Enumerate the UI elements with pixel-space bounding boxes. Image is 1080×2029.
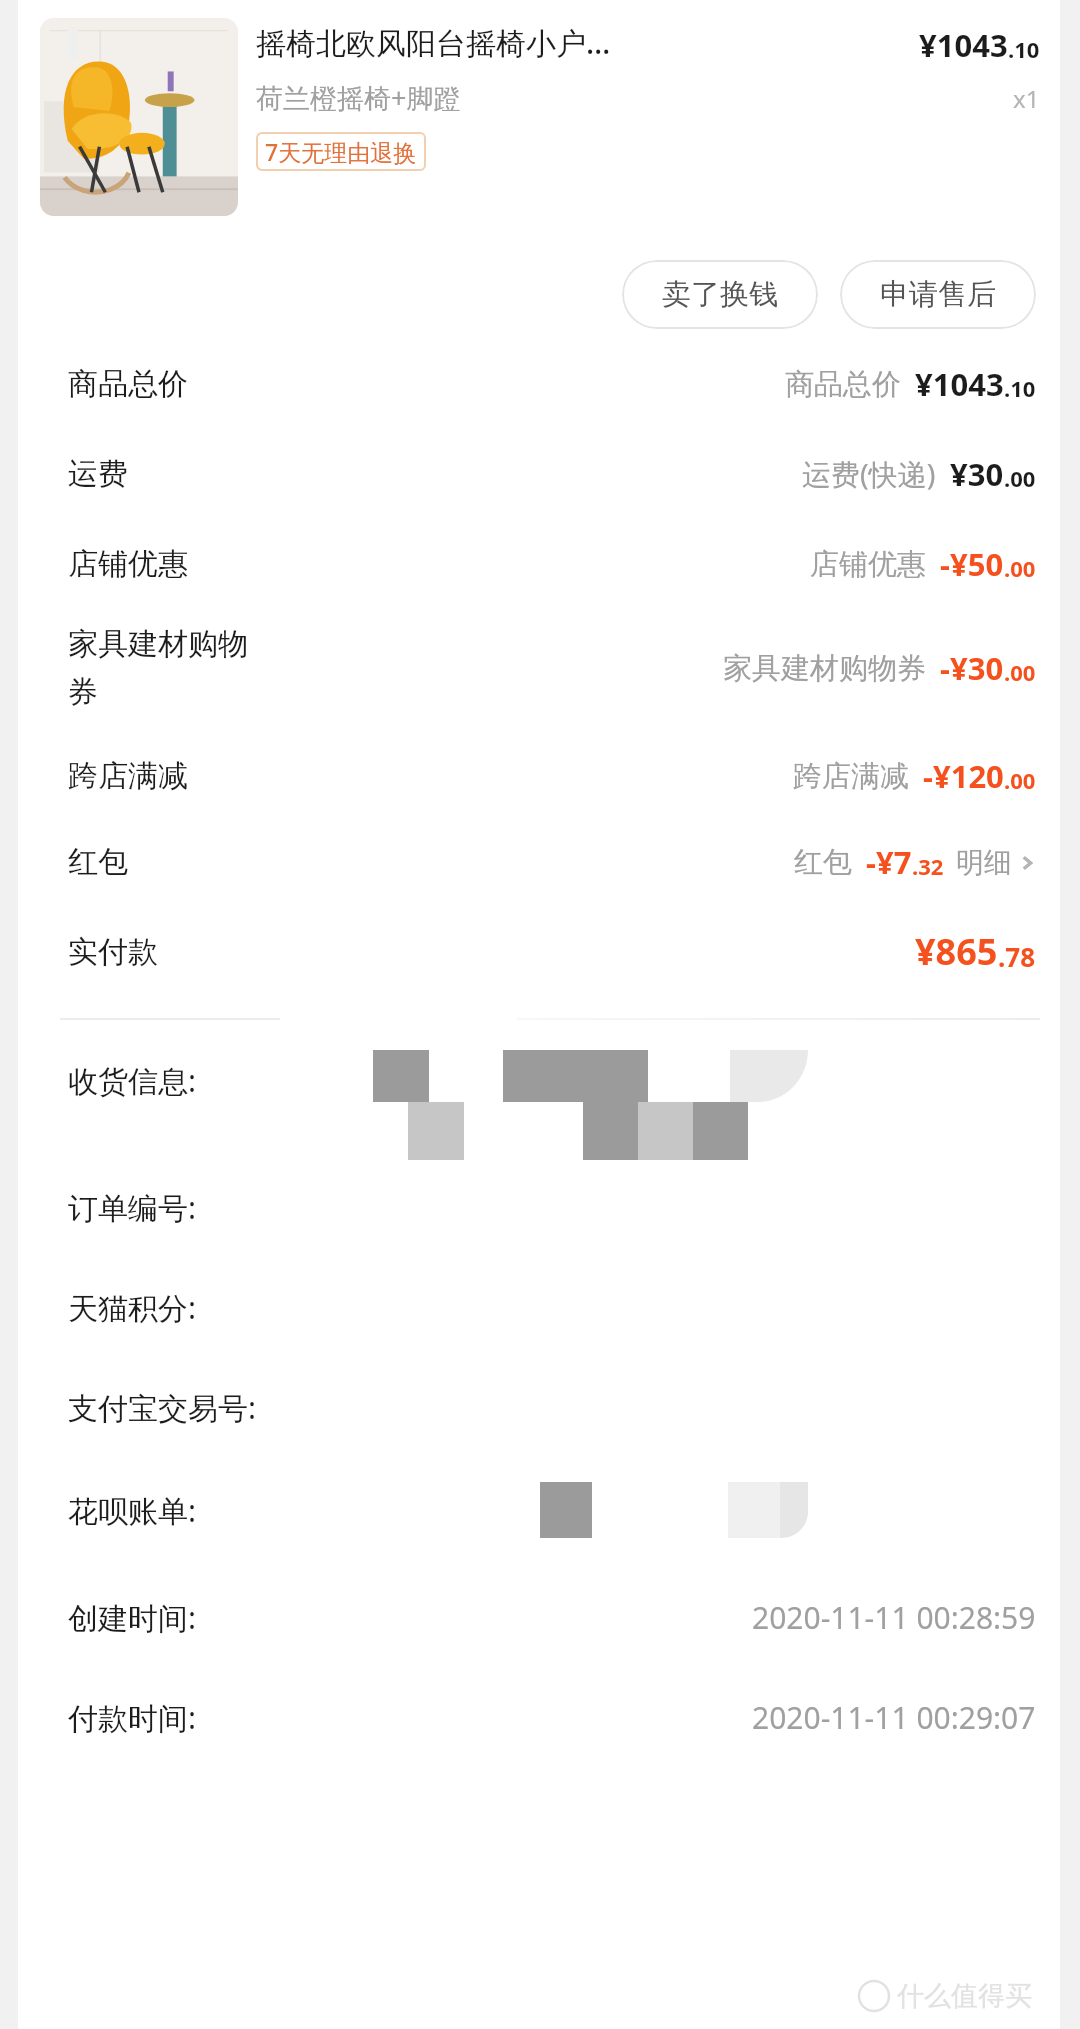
staticText: 花呗账单:: [68, 1490, 197, 1531]
button[interactable]: 卖了换钱: [622, 260, 818, 329]
staticText: 荷兰橙摇椅+脚蹬: [256, 79, 461, 116]
staticText: ¥865: [915, 927, 998, 976]
staticText: 店铺优惠: [810, 546, 926, 583]
staticText: 摇椅北欧风阳台摇椅小户…: [256, 22, 611, 63]
staticText: 跨店满减: [68, 757, 188, 795]
staticText: .00: [1004, 553, 1036, 583]
staticText: -¥30: [940, 647, 1004, 689]
staticText: 家具建材购物券: [723, 650, 926, 687]
staticText: 支付宝交易号:: [68, 1387, 257, 1428]
staticText: 2020-11-11 00:28:59: [752, 1597, 1036, 1638]
staticText: -¥7: [866, 841, 912, 883]
staticText: 什么值得买: [897, 1979, 1032, 2013]
staticText: 红包: [794, 844, 852, 881]
staticText: .78: [998, 939, 1036, 974]
staticText: 申请售后: [880, 276, 996, 313]
staticText: 卖了换钱: [662, 276, 778, 313]
staticText: .00: [1004, 657, 1036, 687]
staticText: .10: [1008, 34, 1040, 64]
staticText: 创建时间:: [68, 1597, 197, 1638]
staticText: 付款时间:: [68, 1697, 197, 1738]
staticText: ¥1043: [919, 24, 1008, 66]
button[interactable]: 明细: [956, 845, 1036, 880]
staticText: 收货信息:: [68, 1060, 197, 1101]
staticText: .00: [1004, 765, 1036, 795]
button[interactable]: 申请售后: [840, 260, 1036, 329]
staticText: 运费: [68, 455, 128, 493]
staticText: 明细: [956, 845, 1012, 880]
staticText: 家具建材购物: [68, 625, 248, 663]
staticText: ¥1043: [915, 363, 1004, 405]
staticText: 商品总价: [785, 366, 901, 403]
staticText: 天猫积分:: [68, 1287, 197, 1328]
staticText: 跨店满减: [793, 758, 909, 795]
staticText: 实付款: [68, 933, 158, 971]
staticText: .10: [1004, 373, 1036, 403]
staticText: 商品总价: [68, 365, 188, 403]
staticText: 7天无理由退换: [265, 136, 417, 167]
staticText: 运费(快递): [802, 454, 936, 494]
staticText: 订单编号:: [68, 1187, 197, 1228]
staticText: ¥30: [950, 453, 1004, 495]
staticText: 店铺优惠: [68, 545, 188, 583]
staticText: -¥50: [940, 543, 1004, 585]
staticText: 2020-11-11 00:29:07: [752, 1697, 1036, 1738]
staticText: -¥120: [923, 755, 1004, 797]
staticText: x1: [1013, 82, 1040, 115]
staticText: 券: [68, 673, 98, 711]
staticText: .00: [1004, 463, 1036, 493]
staticText: .32: [912, 851, 944, 881]
staticText: 红包: [68, 843, 128, 881]
